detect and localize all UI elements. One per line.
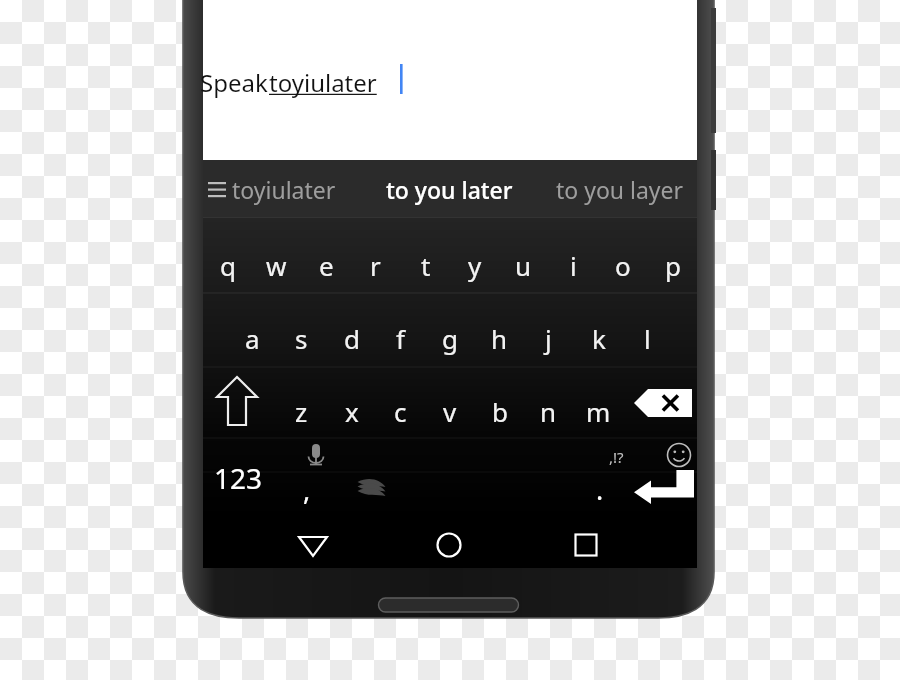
button[interactable]: p: [648, 228, 697, 302]
button[interactable]: .: [580, 467, 620, 511]
staticText: h: [491, 321, 508, 356]
button[interactable]: u: [499, 228, 548, 302]
staticText: r: [370, 248, 381, 283]
button[interactable]: toyiulater: [199, 161, 369, 217]
button[interactable]: Menu: [204, 174, 230, 204]
staticText: e: [319, 248, 334, 283]
staticText: toyiulater: [232, 174, 336, 205]
button[interactable]: Emoji: [663, 439, 695, 471]
button[interactable]: i: [549, 228, 598, 302]
staticText: c: [394, 394, 407, 429]
staticText: t: [421, 248, 431, 283]
button[interactable]: l: [623, 302, 672, 374]
button[interactable]: ,: [287, 467, 327, 511]
button[interactable]: m: [574, 376, 623, 446]
staticText: j: [545, 321, 552, 356]
staticText: a: [245, 321, 260, 356]
staticText: z: [295, 394, 308, 429]
button[interactable]: Recents: [554, 521, 618, 569]
staticText: y: [468, 248, 482, 283]
button[interactable]: x: [327, 376, 376, 446]
staticText: u: [515, 248, 532, 283]
button[interactable]: Enter: [633, 468, 695, 510]
button[interactable]: Home: [417, 521, 481, 569]
staticText: i: [570, 248, 577, 283]
staticText: g: [442, 321, 458, 356]
button[interactable]: to you later: [364, 161, 534, 217]
button[interactable]: Back: [281, 521, 345, 569]
button[interactable]: y: [450, 228, 499, 302]
staticText: to you later: [386, 174, 513, 205]
button[interactable]: Shift: [208, 373, 266, 435]
staticText: b: [492, 394, 508, 429]
button[interactable]: e: [302, 228, 351, 302]
staticText: k: [592, 321, 606, 356]
button[interactable]: t: [401, 228, 450, 302]
button[interactable]: s: [277, 302, 326, 374]
staticText: ,: [303, 471, 311, 508]
staticText: o: [615, 248, 631, 283]
button[interactable]: c: [376, 376, 425, 446]
button[interactable]: a: [228, 302, 277, 374]
staticText: w: [266, 248, 287, 283]
button[interactable]: Space: [324, 463, 574, 511]
staticText: l: [644, 321, 651, 356]
staticText: 123: [214, 459, 263, 497]
staticText: .: [596, 471, 604, 508]
staticText: s: [295, 321, 308, 356]
button[interactable]: o: [598, 228, 647, 302]
button[interactable]: f: [376, 302, 425, 374]
button[interactable]: g: [425, 302, 474, 374]
staticText: x: [345, 394, 359, 429]
button[interactable]: k: [574, 302, 623, 374]
button[interactable]: Speak: [200, 58, 430, 102]
staticText: to you layer: [556, 174, 684, 205]
button[interactable]: 123: [203, 450, 273, 506]
button[interactable]: h: [475, 302, 524, 374]
staticText: toyiulater: [269, 66, 377, 99]
staticText: m: [586, 394, 611, 429]
staticText: f: [396, 321, 405, 356]
button[interactable]: z: [277, 376, 326, 446]
button[interactable]: r: [351, 228, 400, 302]
button[interactable]: b: [475, 376, 524, 446]
button[interactable]: n: [524, 376, 573, 446]
staticText: p: [665, 248, 681, 283]
button[interactable]: q: [203, 228, 252, 302]
staticText: n: [540, 394, 557, 429]
button[interactable]: w: [252, 228, 301, 302]
button[interactable]: to you layer: [535, 161, 705, 217]
button[interactable]: ,!?: [596, 442, 636, 472]
button[interactable]: Voice input: [299, 440, 333, 474]
staticText: q: [220, 248, 236, 283]
button[interactable]: j: [524, 302, 573, 374]
staticText: d: [344, 321, 360, 356]
staticText: v: [443, 394, 457, 429]
button[interactable]: v: [425, 376, 474, 446]
staticText: ,!?: [609, 447, 624, 467]
staticText: Speak: [200, 66, 274, 99]
button[interactable]: d: [327, 302, 376, 374]
button[interactable]: Backspace: [632, 383, 694, 423]
